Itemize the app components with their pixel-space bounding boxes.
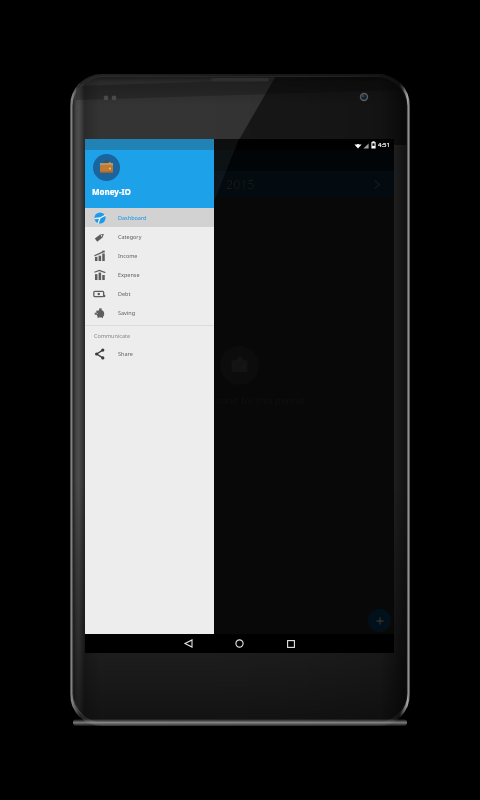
button[interactable]: Income: [85, 246, 214, 265]
other: Next period: [372, 179, 383, 190]
button[interactable]: Expense: [85, 265, 214, 284]
button[interactable]: Debt: [85, 284, 214, 303]
staticText: Share: [118, 350, 133, 357]
staticText: 4:51: [378, 141, 390, 149]
button[interactable]: Saving: [85, 303, 214, 322]
staticText: 2015: [226, 176, 255, 193]
staticText: Category: [118, 233, 142, 240]
button[interactable]: Share: [85, 344, 214, 363]
staticText: Expense: [118, 271, 140, 278]
staticText: Saving: [118, 309, 136, 316]
button[interactable]: Category: [85, 227, 214, 246]
staticText: No data found for this period: [174, 394, 305, 407]
button[interactable]: Recent apps: [281, 634, 301, 653]
staticText: Debt: [118, 290, 131, 297]
button[interactable]: Home: [229, 634, 249, 653]
staticText: Money-IO: [92, 186, 131, 197]
staticText: Dashboard: [118, 214, 147, 221]
button[interactable]: Add: [368, 609, 391, 632]
button[interactable]: 2015: [85, 171, 394, 197]
staticText: Communicate: [94, 332, 131, 339]
button[interactable]: Dashboard: [85, 208, 214, 227]
button[interactable]: Back: [178, 634, 198, 653]
staticText: Income: [118, 252, 138, 259]
